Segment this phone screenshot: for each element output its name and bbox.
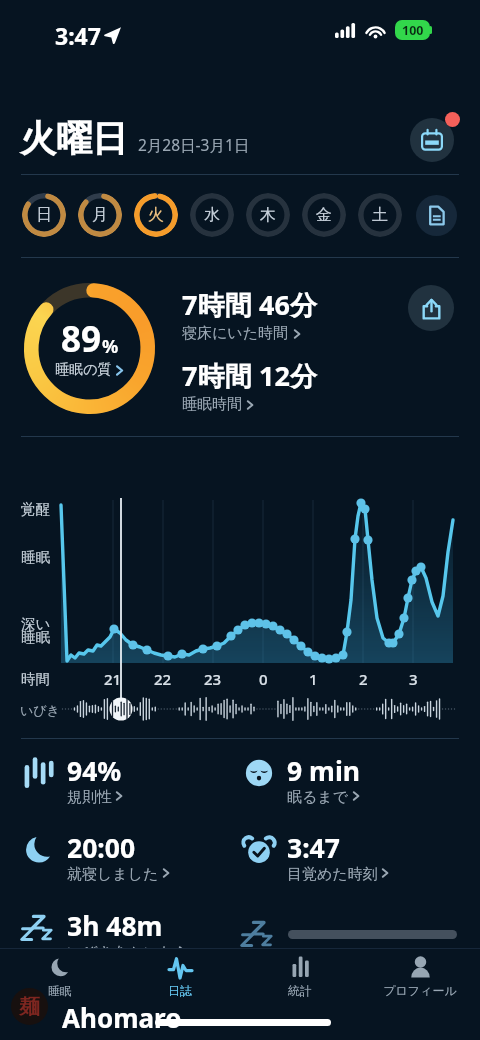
staticText: 木 [260,205,276,225]
staticText: 眠るまで [287,788,349,804]
staticText: 9 min [287,753,361,789]
staticText: 火 [148,205,164,225]
button[interactable]: 89 [24,283,155,414]
button[interactable]: 7時間 [182,286,317,343]
staticText: 麺 [19,994,40,1020]
staticText: 統計 [288,983,312,998]
staticText: 3:47 [287,830,340,866]
staticText: 3 [409,669,418,689]
button[interactable]: 火 [134,193,178,237]
button[interactable]: 統計 [245,952,355,1006]
staticText: 3h 48m [67,908,163,944]
staticText: 睡眠時間 [182,395,242,414]
staticText: 89 [61,315,102,363]
staticText: 100 [402,22,424,39]
staticText: 46分 [259,286,317,323]
staticText: 時間 [21,670,50,688]
staticText: 睡眠 [21,628,50,646]
button[interactable]: 木 [246,193,290,237]
staticText: 規則性 [67,788,112,804]
staticText: 21 [104,669,122,689]
staticText: プロフィール [383,983,457,998]
staticText: 睡眠の質 [55,361,112,379]
button[interactable]: 金 [302,193,346,237]
staticText: 12分 [259,357,317,394]
staticText: 7時間 [182,286,252,323]
staticText: 寝床にいた時間 [182,324,289,343]
staticText: Ahomaro [62,1000,182,1035]
button[interactable]: 月 [78,193,122,237]
button[interactable]: 水 [190,193,234,237]
staticText: 2月28日-3月1日 [138,134,250,155]
button[interactable]: 3h 48m [21,908,187,960]
button[interactable]: 94% [21,753,124,805]
staticText: 2 [359,669,368,689]
staticText: 覚醒 [21,500,50,518]
staticText: 22 [154,669,172,689]
staticText: 金 [316,205,332,225]
staticText: % [102,334,119,359]
staticText: 水 [204,205,220,225]
button[interactable]: 土 [358,193,402,237]
staticText: 睡眠 [21,548,50,566]
staticText: 94% [67,753,122,789]
button[interactable]: プロフィール [365,952,475,1006]
staticText: 20:00 [67,830,136,866]
staticText: 0 [259,669,268,689]
button[interactable]: Report [416,195,457,236]
staticText: 土 [372,205,388,225]
staticText: 就寝しました [67,865,159,881]
button[interactable]: 日誌 [125,952,235,1006]
button[interactable]: Calendar [410,118,454,162]
button[interactable]: 7時間 [182,357,317,414]
button[interactable]: 20:00 [21,830,171,882]
staticText: 日 [36,205,52,225]
staticText: 月 [92,205,108,225]
staticText: 日誌 [168,983,192,998]
staticText: 火曜日 [20,116,128,161]
staticText: 23 [204,669,222,689]
staticText: 目覚めた時刻 [287,865,378,881]
staticText: 3:47 [55,20,101,51]
staticText: いびき [20,702,60,718]
staticText: 1 [309,669,318,689]
button[interactable]: Share [408,285,454,331]
staticText: 7時間 [182,357,252,394]
staticText: 深い [21,615,51,633]
staticText: いびきをかいた [67,943,175,959]
staticText: 睡眠 [48,983,72,998]
button[interactable]: 3:47 [241,830,390,882]
button[interactable]: 9 min [241,753,361,805]
button[interactable]: 日 [22,193,66,237]
button[interactable]: 睡眠 [5,952,115,1006]
